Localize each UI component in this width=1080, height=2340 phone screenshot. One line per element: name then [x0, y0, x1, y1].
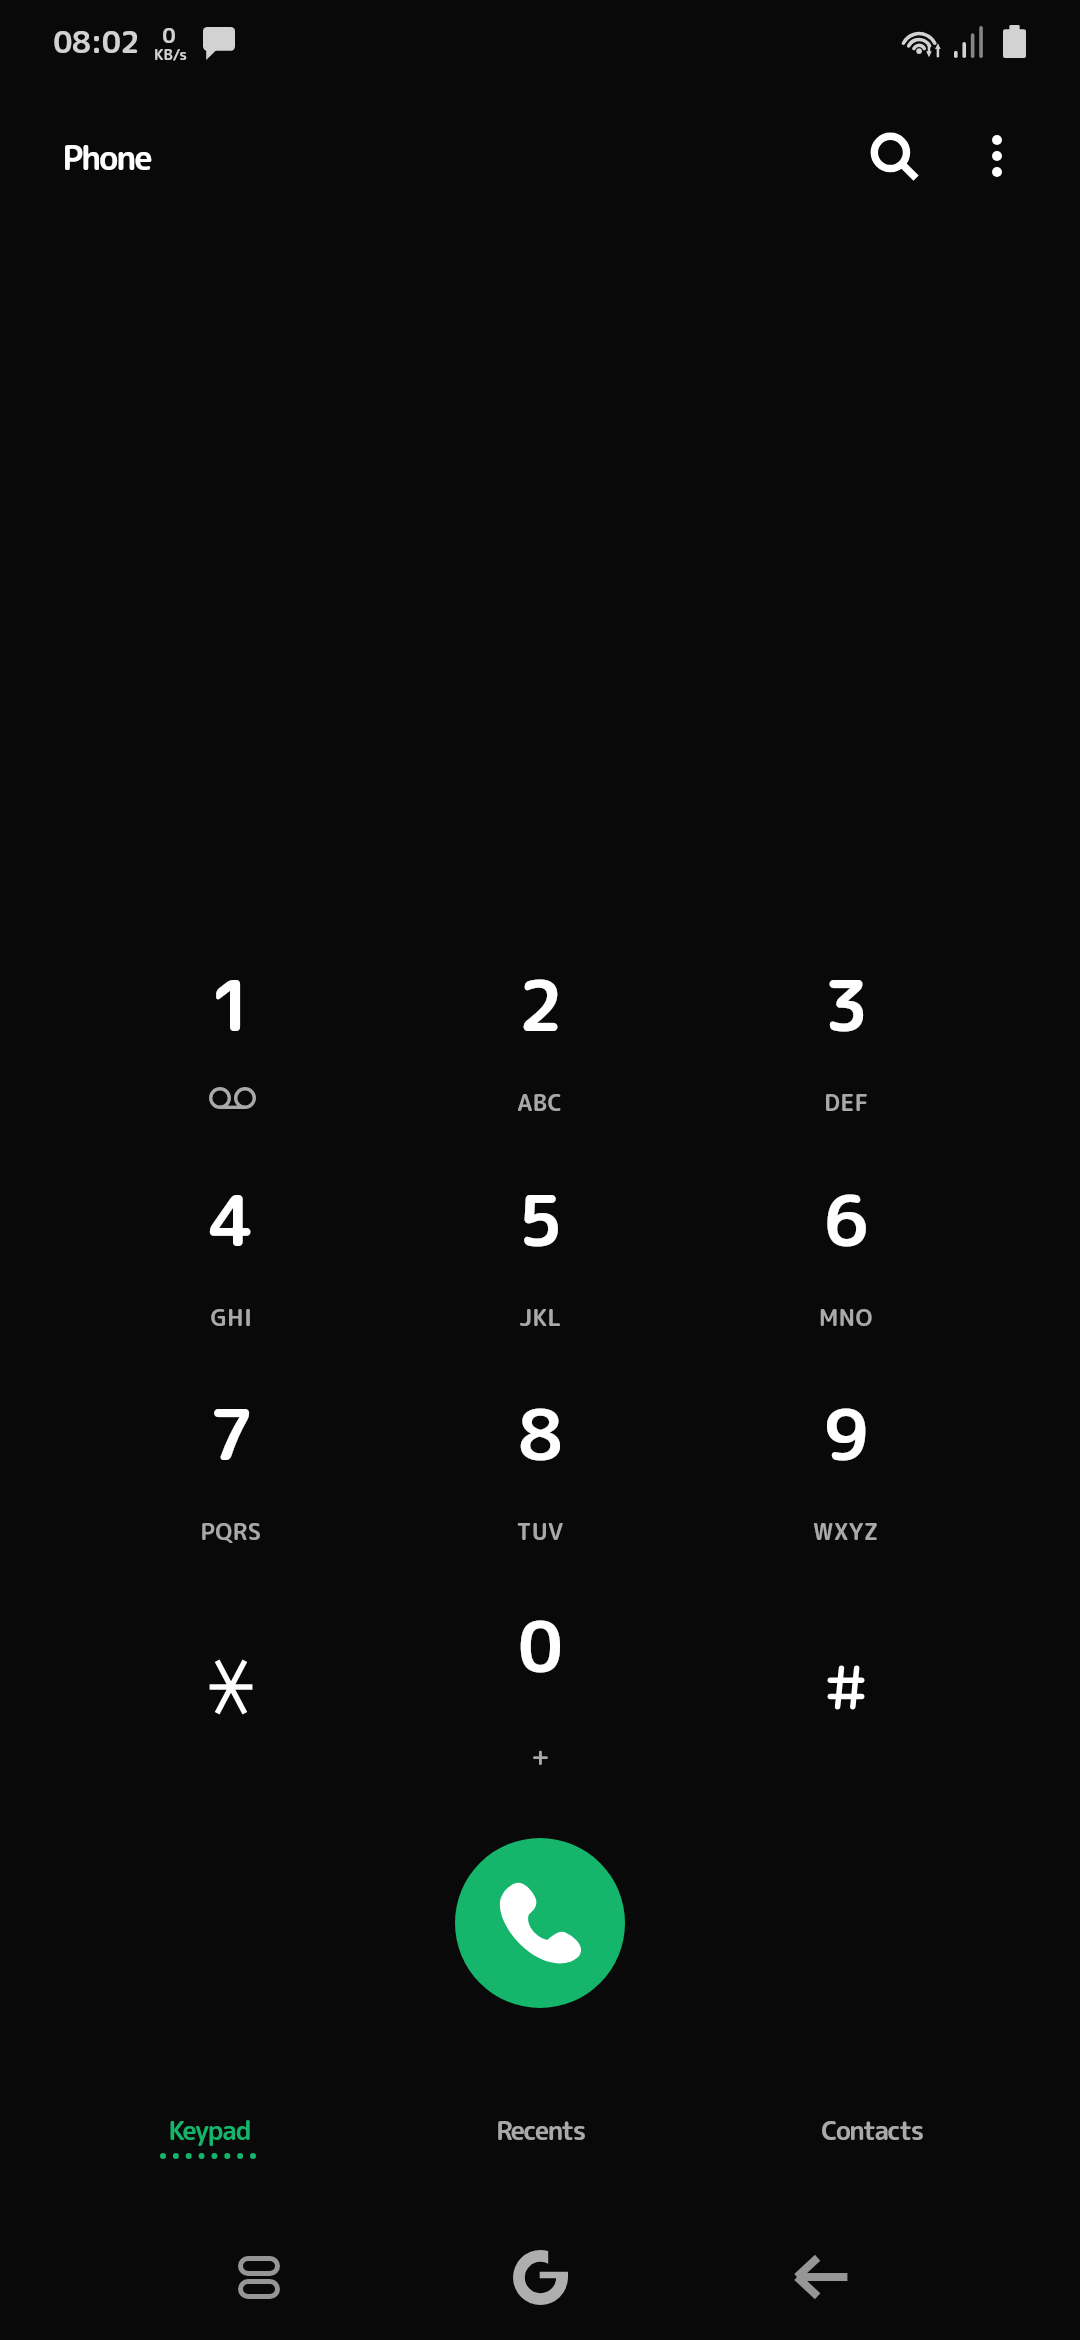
button[interactable]: More options: [941, 100, 1053, 212]
staticText: +: [531, 1738, 550, 1773]
staticText: 2: [518, 956, 563, 1054]
staticText: 08:02: [53, 21, 139, 63]
button[interactable]: 4: [78, 1148, 384, 1363]
staticText: 7: [209, 1385, 254, 1483]
button[interactable]: 9: [693, 1362, 999, 1577]
button[interactable]: Back: [731, 2222, 911, 2332]
staticText: 0: [162, 20, 176, 49]
staticText: 0: [518, 1597, 563, 1695]
button[interactable]: Google Assistant: [450, 2222, 630, 2332]
staticText: ABC: [517, 1086, 563, 1118]
staticText: 8: [518, 1385, 563, 1483]
staticText: KB/s: [154, 44, 187, 65]
button[interactable]: 0: [387, 1574, 693, 1789]
button[interactable]: 6: [693, 1148, 999, 1363]
staticText: 4: [209, 1171, 254, 1269]
button[interactable]: 3: [693, 933, 999, 1148]
staticText: 9: [824, 1385, 869, 1483]
button[interactable]: [707, 2076, 1037, 2186]
staticText: GHI: [210, 1301, 253, 1333]
button[interactable]: [44, 2076, 374, 2186]
staticText: 1: [209, 956, 254, 1054]
staticText: Contacts: [821, 2112, 923, 2148]
staticText: 3: [824, 956, 869, 1054]
button[interactable]: 5: [387, 1148, 693, 1363]
staticText: DEF: [824, 1086, 869, 1118]
staticText: 6: [824, 1171, 869, 1269]
button[interactable]: 7: [78, 1362, 384, 1577]
button[interactable]: Recent apps: [169, 2222, 349, 2332]
button[interactable]: 8: [387, 1362, 693, 1577]
staticText: Keypad: [168, 2112, 251, 2148]
staticText: PQRS: [200, 1515, 262, 1547]
button[interactable]: star: [78, 1574, 384, 1789]
button[interactable]: pound: [693, 1574, 999, 1789]
button[interactable]: Call: [455, 1838, 625, 2008]
staticText: Phone: [62, 135, 151, 181]
staticText: WXYZ: [813, 1515, 879, 1547]
staticText: JKL: [519, 1301, 562, 1333]
button[interactable]: 1: [78, 933, 384, 1148]
button[interactable]: [375, 2076, 705, 2186]
staticText: MNO: [819, 1301, 873, 1333]
staticText: Recents: [496, 2112, 585, 2148]
staticText: 5: [518, 1171, 563, 1269]
button[interactable]: Search: [838, 100, 950, 212]
staticText: TUV: [516, 1515, 564, 1547]
button[interactable]: 2: [387, 933, 693, 1148]
